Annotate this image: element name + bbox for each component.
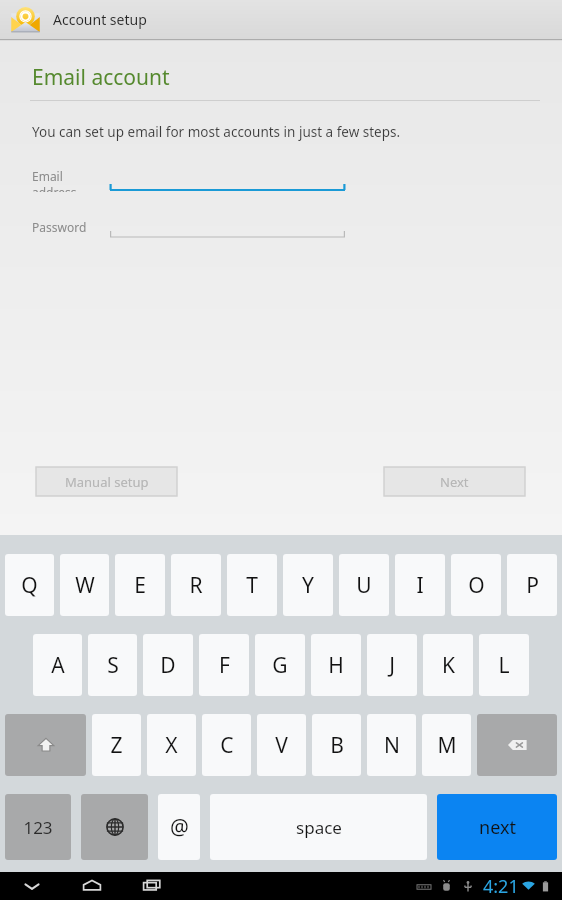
staticText: K <box>442 651 455 680</box>
staticText: C <box>220 731 234 760</box>
button[interactable]: S <box>88 634 137 696</box>
staticText: space <box>296 816 342 839</box>
staticText: P <box>526 571 539 600</box>
staticText: Next <box>440 473 469 491</box>
button[interactable]: next <box>437 794 557 860</box>
staticText: A <box>51 651 65 680</box>
button[interactable]: A <box>33 634 82 696</box>
staticText: X <box>165 731 178 760</box>
button[interactable]: G <box>255 634 305 696</box>
staticText: J <box>389 651 395 680</box>
staticText: Z <box>110 731 123 760</box>
button[interactable]: Z <box>92 714 141 776</box>
staticText: G <box>272 651 288 680</box>
button[interactable]: E <box>115 554 165 616</box>
button[interactable]: Q <box>5 554 54 616</box>
button[interactable]: Recent apps <box>134 872 170 900</box>
button[interactable]: Manual setup <box>36 467 177 496</box>
button[interactable]: T <box>227 554 277 616</box>
button[interactable]: U <box>339 554 389 616</box>
staticText: D <box>160 651 176 680</box>
staticText: F <box>219 651 230 680</box>
button[interactable]: Shift <box>5 714 86 776</box>
staticText: @ <box>170 813 189 842</box>
button[interactable]: @ <box>158 794 200 860</box>
button[interactable]: B <box>312 714 361 776</box>
button[interactable]: O <box>451 554 501 616</box>
staticText: I <box>416 571 424 600</box>
staticText: Manual setup <box>65 473 149 491</box>
button[interactable]: space <box>210 794 427 860</box>
button[interactable]: N <box>367 714 416 776</box>
button[interactable]: R <box>171 554 221 616</box>
staticText: Y <box>302 571 314 600</box>
staticText: 4:21 <box>483 874 519 899</box>
staticText: Password <box>32 219 87 235</box>
button[interactable]: X <box>147 714 196 776</box>
staticText: L <box>498 651 510 680</box>
button[interactable]: H <box>311 634 361 696</box>
button[interactable]: 123 <box>5 794 71 860</box>
staticText: R <box>189 571 203 600</box>
button[interactable]: Y <box>283 554 333 616</box>
button[interactable]: Backspace <box>477 714 557 776</box>
button[interactable]: J <box>367 634 417 696</box>
button[interactable]: M <box>422 714 471 776</box>
button[interactable]: V <box>257 714 306 776</box>
button[interactable]: L <box>479 634 529 696</box>
button[interactable]: F <box>199 634 249 696</box>
staticText: next <box>479 815 516 840</box>
staticText: You can set up email for most accounts i… <box>32 123 401 141</box>
staticText: Account setup <box>53 10 147 29</box>
button[interactable]: K <box>423 634 473 696</box>
staticText: Q <box>21 571 38 600</box>
button[interactable] <box>110 215 345 239</box>
staticText: V <box>275 731 288 760</box>
staticText: Email account <box>32 63 170 92</box>
button[interactable]: Change language <box>81 794 148 860</box>
button[interactable]: I <box>395 554 445 616</box>
staticText: H <box>328 651 344 680</box>
staticText: N <box>384 731 400 760</box>
staticText: B <box>330 731 344 760</box>
staticText: M <box>437 731 457 760</box>
staticText: S <box>107 651 119 680</box>
button[interactable] <box>110 168 345 192</box>
button[interactable]: W <box>60 554 109 616</box>
staticText: Email address <box>32 168 110 192</box>
staticText: W <box>75 571 95 600</box>
button[interactable]: Back <box>14 872 50 900</box>
button[interactable]: D <box>143 634 193 696</box>
button[interactable]: Home <box>74 872 110 900</box>
button[interactable]: C <box>202 714 251 776</box>
button[interactable]: Next <box>384 467 525 496</box>
staticText: O <box>468 571 485 600</box>
button[interactable]: P <box>507 554 557 616</box>
staticText: U <box>356 571 372 600</box>
staticText: T <box>246 571 258 600</box>
staticText: 123 <box>23 816 53 839</box>
staticText: E <box>134 571 146 600</box>
